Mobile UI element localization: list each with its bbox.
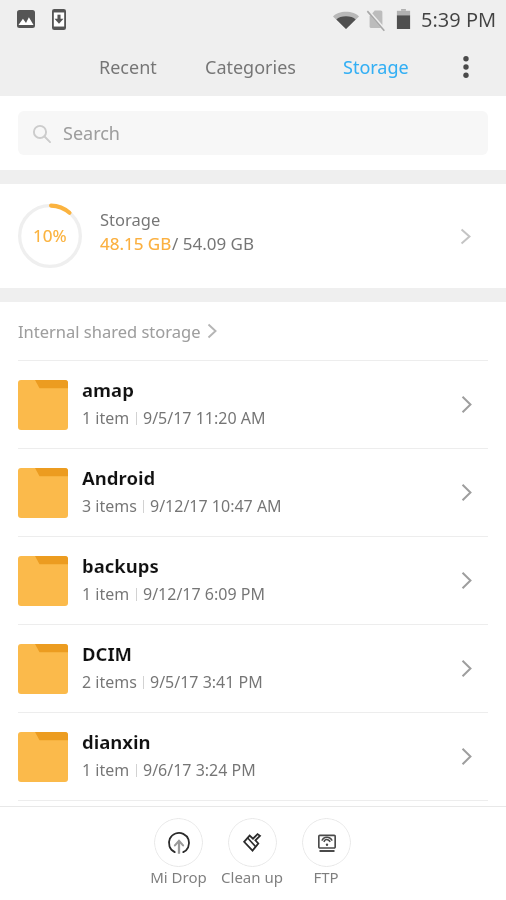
staticText: FTP [313, 867, 339, 887]
staticText: DCIM [82, 641, 133, 666]
staticText: 2 items [82, 671, 137, 693]
staticText: 9/12/17 6:09 PM [143, 583, 265, 605]
button[interactable]: Clean up [215, 807, 289, 887]
staticText: Android [82, 465, 156, 490]
staticText: 10% [33, 224, 67, 247]
staticText: Recent [99, 55, 157, 80]
staticText: 5:39 PM [421, 6, 497, 33]
staticText: Internal shared storage [18, 320, 201, 342]
staticText: 9/5/17 11:20 AM [143, 407, 266, 429]
staticText: dianxin [82, 729, 151, 754]
staticText: 9/12/17 10:47 AM [150, 495, 282, 517]
staticText: Clean up [221, 867, 283, 887]
button[interactable]: dianxin [0, 713, 506, 800]
button[interactable]: Recent [64, 38, 191, 96]
button[interactable]: Search [18, 111, 488, 155]
button[interactable]: Storage [310, 38, 441, 96]
staticText: Storage [343, 55, 409, 80]
button[interactable]: More options [440, 38, 492, 96]
button[interactable]: Android [0, 449, 506, 536]
staticText: backups [82, 553, 159, 578]
staticText: amap [82, 377, 134, 402]
button[interactable]: 10% [0, 184, 506, 288]
button[interactable]: Categories [191, 38, 310, 96]
button[interactable]: DCIM [0, 625, 506, 712]
staticText: 1 item [82, 407, 130, 429]
staticText: 9/5/17 3:41 PM [150, 671, 263, 693]
button[interactable]: Internal shared storage [0, 302, 506, 360]
button[interactable]: FTP [289, 807, 363, 887]
staticText: 48.15 GB [100, 232, 172, 255]
button[interactable]: amap [0, 361, 506, 448]
button[interactable]: backups [0, 537, 506, 624]
staticText: 9/6/17 3:24 PM [143, 759, 256, 781]
staticText: / 54.09 GB [172, 232, 255, 255]
staticText: 1 item [82, 583, 130, 605]
staticText: Mi Drop [150, 867, 207, 887]
staticText: 3 items [82, 495, 137, 517]
staticText: Storage [100, 208, 161, 230]
button[interactable]: Mi Drop [141, 807, 215, 887]
staticText: 1 item [82, 759, 130, 781]
staticText: Categories [205, 55, 296, 80]
staticText: Search [63, 121, 120, 146]
